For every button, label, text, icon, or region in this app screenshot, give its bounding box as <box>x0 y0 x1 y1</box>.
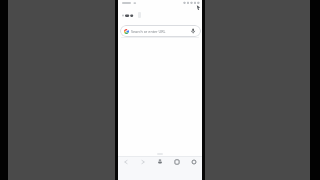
staticText: Search or enter URL <box>131 29 166 34</box>
button[interactable] <box>151 157 168 180</box>
button[interactable] <box>118 157 134 180</box>
button[interactable] <box>121 10 155 20</box>
button[interactable]: Search or enter URL <box>120 25 201 37</box>
button[interactable] <box>185 157 202 180</box>
button[interactable] <box>168 157 185 180</box>
button[interactable] <box>134 157 151 180</box>
